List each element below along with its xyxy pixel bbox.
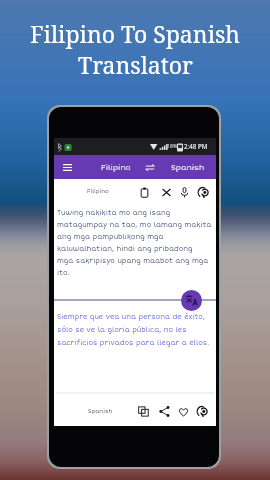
- button[interactable]: Paste: [136, 181, 152, 203]
- button[interactable]: Menu: [59, 155, 76, 179]
- button[interactable]: Speak: [195, 181, 211, 203]
- button[interactable]: Clear: [158, 181, 174, 203]
- button[interactable]: Speak: [194, 400, 210, 422]
- staticText: Siempre que vea una persona de éxito, só…: [57, 313, 210, 347]
- staticText: Spanish: [171, 163, 205, 172]
- button[interactable]: Voice input: [176, 181, 192, 203]
- button[interactable]: Favorite: [175, 400, 191, 422]
- button[interactable]: Filipino: [81, 179, 115, 204]
- staticText: Translator: [78, 49, 193, 80]
- staticText: Filipino To Spanish: [30, 18, 240, 49]
- button[interactable]: Spanish: [83, 400, 117, 422]
- staticText: Spanish: [88, 408, 113, 415]
- staticText: Tuwing nakikita mo ang isang matagumpay …: [57, 209, 212, 277]
- button[interactable]: Share: [156, 400, 172, 422]
- button[interactable]: Swap languages: [142, 155, 158, 179]
- button[interactable]: Translate: [181, 290, 202, 311]
- staticText: Filipino: [101, 163, 131, 172]
- button[interactable]: Copy: [135, 400, 151, 422]
- button[interactable]: Filipino: [96, 155, 136, 179]
- staticText: 18%: [167, 142, 178, 149]
- staticText: 2:48 PM: [184, 142, 208, 150]
- staticText: Filipino: [87, 188, 109, 195]
- button[interactable]: Spanish: [168, 155, 208, 179]
